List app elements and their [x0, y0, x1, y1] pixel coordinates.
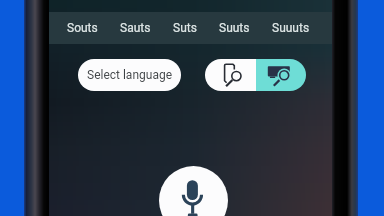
staticText: Select language	[87, 68, 173, 82]
button[interactable]: Voice search	[159, 166, 228, 216]
staticText: Suts	[173, 21, 197, 35]
staticText: Sauts	[120, 21, 151, 35]
staticText: Suuts	[219, 21, 250, 35]
button[interactable]: Search text	[205, 59, 256, 91]
staticText: Souts	[67, 21, 98, 35]
button[interactable]: Select language	[78, 59, 181, 91]
staticText: Suuuts	[272, 21, 310, 35]
button[interactable]: Suts	[162, 12, 208, 44]
button[interactable]: Search image	[256, 59, 306, 91]
button[interactable]: Suuuts	[261, 12, 321, 44]
button[interactable]: Suuts	[208, 12, 261, 44]
button[interactable]: Sauts	[109, 12, 162, 44]
button[interactable]: Souts	[56, 12, 109, 44]
